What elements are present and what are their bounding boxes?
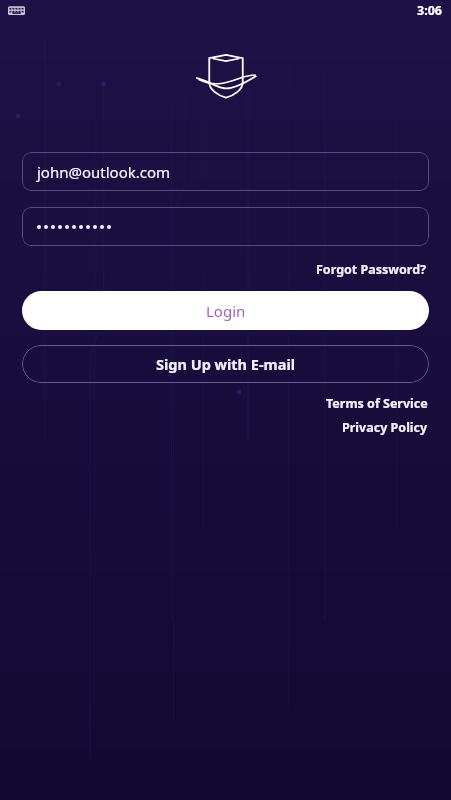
- staticText: john@outlook.com: [37, 162, 171, 182]
- staticText: 3:06: [417, 2, 442, 19]
- staticText: Login: [206, 301, 246, 321]
- staticText: Privacy Policy: [342, 419, 428, 436]
- other: App logo: [195, 53, 257, 99]
- staticText: Forgot Password?: [316, 261, 427, 278]
- button[interactable]: Terms of Service: [325, 394, 429, 413]
- button[interactable]: Login: [22, 291, 429, 330]
- other: Keyboard: [8, 5, 25, 16]
- button[interactable]: Privacy Policy: [341, 418, 429, 437]
- button[interactable]: john@outlook.com: [22, 152, 429, 191]
- staticText: Terms of Service: [326, 395, 428, 412]
- staticText: Sign Up with E-mail: [156, 354, 296, 374]
- button[interactable]: Forgot Password?: [314, 259, 429, 280]
- button[interactable]: [22, 207, 429, 246]
- button[interactable]: Sign Up with E-mail: [22, 345, 429, 383]
